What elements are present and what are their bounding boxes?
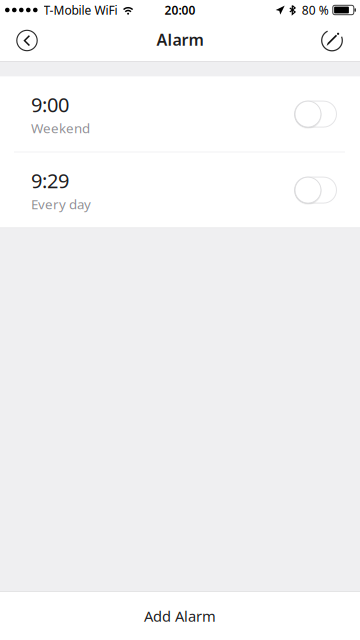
button[interactable]: Edit alarms (311, 20, 360, 61)
button[interactable]: 9:29 (0, 153, 360, 228)
staticText: Every day (31, 195, 91, 213)
staticText: T-Mobile WiFi (44, 2, 118, 18)
staticText: 9:00 (31, 91, 69, 118)
staticText: 9:29 (31, 167, 69, 194)
staticText: Alarm (156, 29, 203, 50)
staticText: 80 % (302, 2, 329, 18)
staticText: 20:00 (164, 2, 195, 18)
staticText: Add Alarm (144, 606, 216, 626)
button[interactable]: Add Alarm (0, 592, 360, 640)
button[interactable]: 9:00 (0, 77, 360, 152)
staticText: Weekend (31, 119, 90, 137)
button[interactable]: Back (0, 20, 48, 61)
